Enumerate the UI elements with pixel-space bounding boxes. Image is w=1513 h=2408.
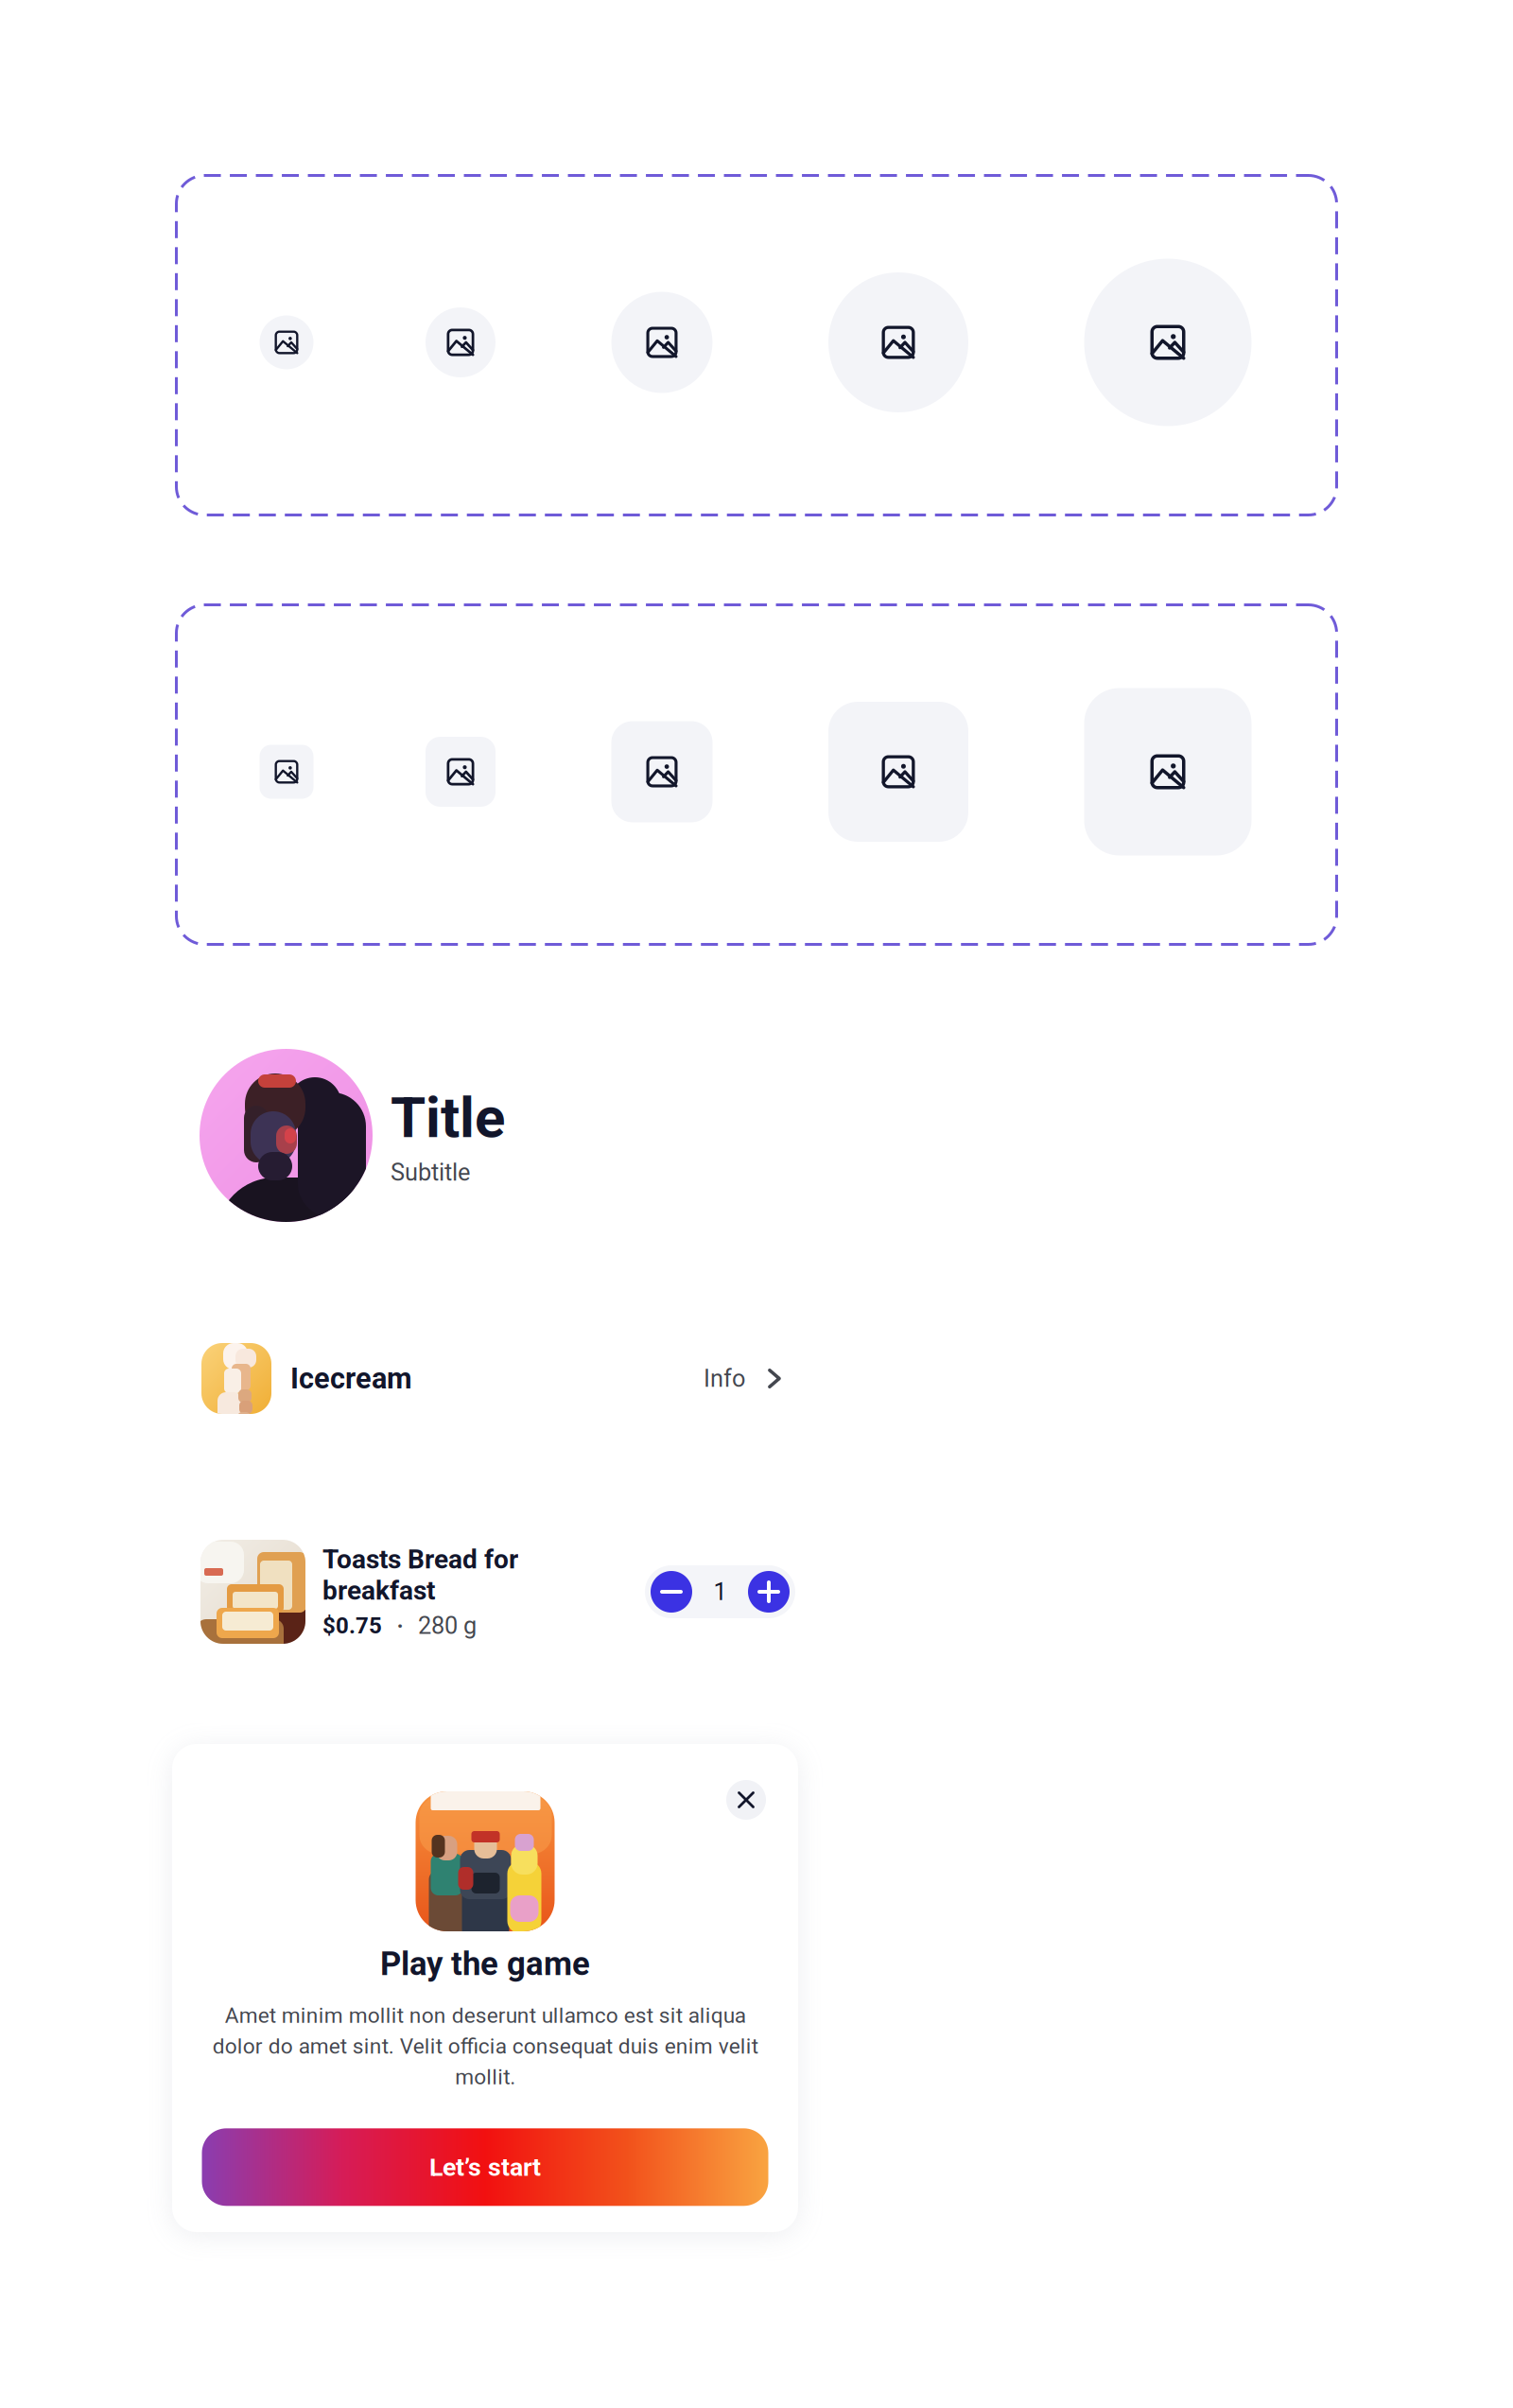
staticText: $0.75 <box>322 1612 382 1639</box>
staticText: Title <box>391 1084 505 1151</box>
staticText: Info <box>704 1365 745 1393</box>
staticText: Amet minim mollit non deserunt ullamco e… <box>212 2003 758 2090</box>
staticText: · <box>397 1612 403 1639</box>
staticText: Subtitle <box>391 1158 470 1187</box>
staticText: Play the game <box>380 1945 590 1983</box>
staticText: Icecream <box>290 1361 412 1395</box>
staticText: Toasts Bread for breakfast <box>322 1544 518 1606</box>
button[interactable]: Close <box>726 1780 766 1820</box>
button[interactable]: Decrease quantity <box>651 1571 692 1613</box>
button[interactable]: Icecream <box>201 1343 785 1414</box>
button[interactable]: Increase quantity <box>748 1571 790 1613</box>
staticText: Let’s start <box>429 2152 541 2182</box>
staticText: 1 <box>713 1578 727 1606</box>
button[interactable]: Let’s start <box>202 2128 768 2206</box>
staticText: 280 g <box>418 1612 477 1640</box>
